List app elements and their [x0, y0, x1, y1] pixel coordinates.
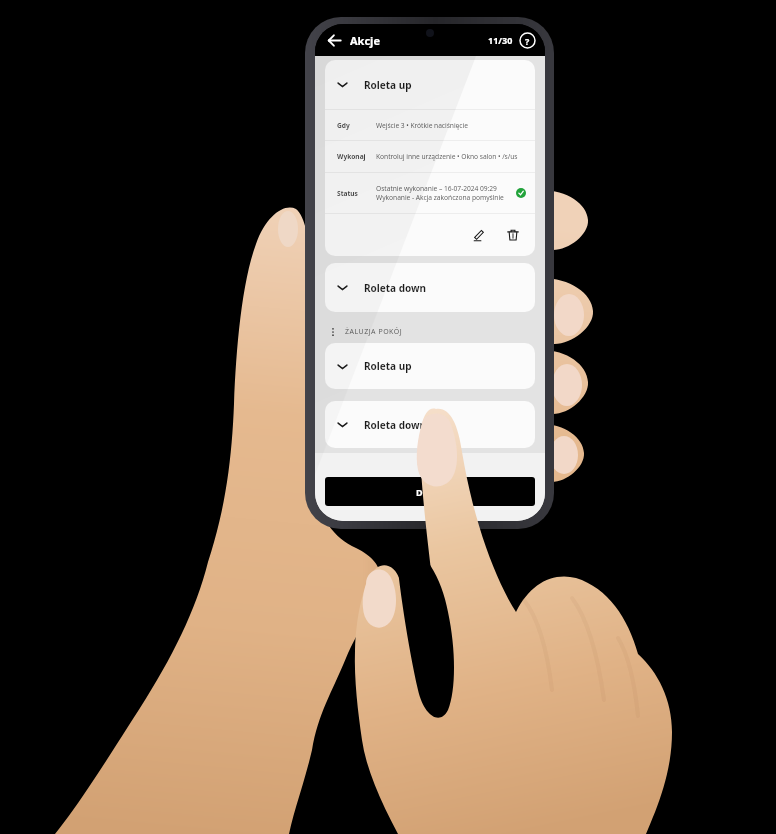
- button[interactable]: Back: [324, 30, 344, 50]
- staticText: ŻALUZJA POKÓJ: [345, 327, 403, 337]
- staticText: Status: [337, 189, 358, 198]
- button[interactable]: Delete: [502, 224, 524, 246]
- button[interactable]: Help: [519, 32, 536, 49]
- staticText: Roleta up: [364, 359, 412, 373]
- button[interactable]: Roleta down: [325, 401, 535, 448]
- staticText: Akcje: [350, 33, 380, 48]
- staticText: Wejście 3 • Krótkie naciśnięcie: [376, 121, 468, 130]
- button[interactable]: Edit: [468, 224, 490, 246]
- button[interactable]: More options: [327, 326, 339, 338]
- button[interactable]: Roleta up: [325, 343, 535, 389]
- staticText: Wykonanie - Akcja zakończona pomyślnie: [376, 193, 504, 202]
- staticText: Dodaj: [416, 486, 444, 498]
- staticText: Roleta down: [364, 418, 427, 432]
- staticText: Roleta down: [364, 281, 427, 295]
- button[interactable]: Dodaj: [325, 477, 535, 506]
- staticText: Gdy: [337, 121, 350, 130]
- button[interactable]: Roleta down: [325, 263, 535, 312]
- staticText: Kontroluj inne urządzenie • Okno salon •…: [376, 152, 518, 161]
- button[interactable]: Roleta up: [325, 60, 535, 109]
- staticText: Roleta up: [364, 78, 412, 92]
- staticText: ?: [525, 35, 530, 47]
- staticText: 11/30: [488, 34, 513, 46]
- staticText: Wykonaj: [337, 152, 366, 161]
- staticText: Ostatnie wykonanie – 16-07-2024 09:29: [376, 184, 497, 193]
